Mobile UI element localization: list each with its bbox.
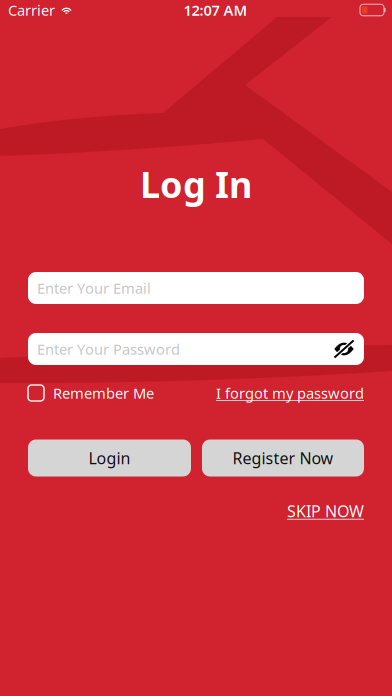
staticText: Enter Your Email (37, 278, 151, 298)
staticText: Login (88, 447, 130, 469)
button[interactable]: Login (28, 439, 191, 476)
staticText: Carrier (8, 0, 55, 20)
button[interactable]: I forgot my password (216, 381, 364, 405)
staticText: Register Now (232, 447, 333, 469)
button[interactable]: Show password (332, 337, 356, 361)
staticText: SKIP NOW (287, 500, 364, 522)
button[interactable]: Register Now (202, 439, 364, 476)
staticText: 12:07 AM (183, 0, 247, 20)
staticText: I forgot my password (216, 383, 364, 403)
staticText: Enter Your Password (37, 339, 180, 359)
button[interactable]: SKIP NOW (287, 498, 364, 524)
staticText: Log In (140, 160, 252, 208)
staticText: Remember Me (53, 383, 154, 403)
button[interactable]: Remember Me (28, 381, 154, 405)
